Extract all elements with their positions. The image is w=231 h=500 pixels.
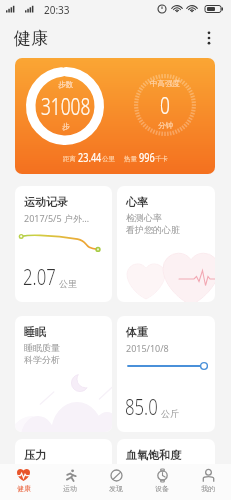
staticText: 2017/5/5 户外…	[24, 212, 90, 224]
button[interactable]: 压力	[15, 439, 112, 479]
button[interactable]: 发现	[93, 464, 139, 500]
button[interactable]: 心率	[117, 186, 215, 302]
staticText: 压力	[24, 448, 46, 462]
staticText: 中高强度	[150, 79, 180, 88]
staticText: 分钟	[158, 121, 173, 130]
staticText: 31008	[41, 89, 91, 122]
button[interactable]: 步数	[15, 58, 215, 174]
staticText: 步数	[58, 80, 73, 89]
staticText: 发现	[109, 484, 123, 493]
staticText: 血氧饱和度	[126, 448, 181, 462]
staticText: 运动记录	[24, 195, 68, 209]
staticText: 科学分析	[24, 354, 60, 365]
staticText: 公里	[102, 155, 115, 163]
staticText: 0	[160, 88, 170, 121]
staticText: 2.07	[23, 261, 56, 291]
staticText: 体重	[126, 325, 148, 339]
staticText: 公里	[59, 278, 77, 289]
staticText: 20:33	[44, 3, 70, 17]
button[interactable]: 血氧饱和度	[117, 439, 215, 479]
staticText: 心率	[126, 195, 148, 209]
button[interactable]: 睡眠	[15, 316, 112, 432]
staticText: 睡眠	[24, 325, 46, 339]
button[interactable]: 体重	[117, 316, 215, 432]
staticText: 看护您的心脏	[126, 224, 180, 235]
staticText: 健康	[17, 484, 31, 493]
button[interactable]: 运动	[47, 464, 93, 500]
staticText: 公斤	[161, 408, 179, 419]
staticText: 睡眠质量	[24, 342, 60, 353]
staticText: 996	[139, 149, 155, 165]
staticText: 2015/10/8	[126, 342, 169, 354]
staticText: 运动	[63, 484, 77, 493]
staticText: 我的	[201, 484, 215, 493]
staticText: 千卡	[155, 155, 168, 163]
staticText: 步	[62, 122, 70, 131]
button[interactable]: 设备	[139, 464, 185, 500]
button[interactable]: 我的	[185, 464, 231, 500]
button[interactable]: 健康	[0, 464, 47, 500]
button[interactable]: 运动记录	[15, 186, 112, 302]
staticText: 热量	[124, 155, 137, 163]
staticText: 23.44	[78, 149, 102, 165]
staticText: 设备	[155, 484, 169, 493]
staticText: 检测心率	[126, 212, 162, 223]
staticText: 85.0	[125, 391, 158, 421]
button[interactable]: More options	[195, 24, 223, 52]
staticText: 健康	[14, 28, 48, 49]
staticText: 距离	[63, 155, 76, 163]
